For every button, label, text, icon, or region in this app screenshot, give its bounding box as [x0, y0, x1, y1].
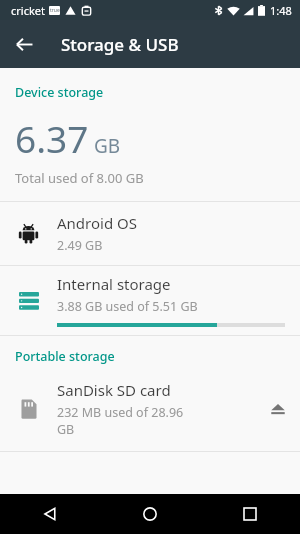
staticText: Total used of 8.00 GB — [15, 169, 144, 187]
staticText: Portable storage — [15, 348, 115, 365]
button[interactable]: Android OS — [0, 202, 300, 265]
button[interactable]: Back — [0, 494, 100, 534]
staticText: 6.37 — [15, 113, 89, 163]
staticText: Storage & USB — [61, 33, 179, 56]
button[interactable]: Internal storage — [0, 266, 300, 335]
button[interactable]: Recents — [200, 494, 300, 534]
staticText: 1:48 — [270, 3, 292, 18]
staticText: 3.88 GB used of 5.51 GB — [57, 298, 198, 315]
button[interactable]: Eject SD card — [256, 387, 300, 431]
staticText: SanDisk SD card — [57, 380, 171, 400]
staticText: Device storage — [15, 84, 104, 101]
button[interactable]: Back — [0, 20, 48, 68]
staticText: GB — [94, 133, 121, 159]
button[interactable]: SanDisk SD card — [0, 373, 300, 445]
staticText: Internal storage — [57, 274, 171, 294]
staticText: cricket — [11, 3, 45, 18]
button[interactable]: Home — [100, 494, 200, 534]
staticText: true — [50, 7, 60, 14]
staticText: 2.49 GB — [57, 237, 103, 254]
staticText: 232 MB used of 28.96 GB — [57, 404, 184, 438]
staticText: Android OS — [57, 213, 137, 233]
